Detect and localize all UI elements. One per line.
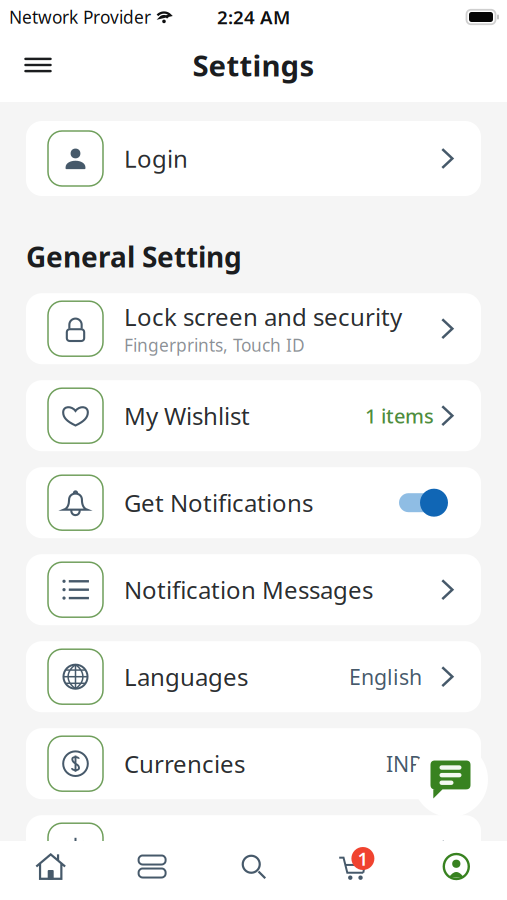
button[interactable]: Menu [16, 43, 60, 87]
staticText: My Wishlist [124, 400, 250, 432]
staticText: 1 items [365, 402, 434, 429]
staticText: Lock screen and security [124, 301, 402, 333]
button[interactable]: Search [203, 841, 304, 900]
button[interactable]: Login [26, 121, 481, 196]
staticText: Settings [192, 45, 314, 84]
button[interactable]: Lock screen and security [26, 293, 481, 364]
button[interactable]: Chat support [413, 742, 488, 817]
button[interactable]: Profile [406, 841, 507, 900]
staticText: INR [386, 749, 422, 778]
button[interactable]: Get Notifications [26, 467, 481, 538]
staticText: Fingerprints, Touch ID [124, 334, 305, 357]
staticText: Login [124, 143, 188, 174]
staticText: Notification Messages [124, 574, 373, 606]
staticText: 2:24 AM [217, 5, 290, 29]
staticText: Light [371, 836, 422, 865]
button[interactable]: Categories [101, 841, 203, 900]
button[interactable]: Currencies [26, 728, 481, 799]
button[interactable]: Notification Messages [26, 554, 481, 625]
staticText: Theme [124, 835, 202, 867]
staticText: English [349, 662, 422, 691]
staticText: Get Notifications [124, 487, 313, 519]
staticText: Currencies [124, 748, 245, 780]
button[interactable]: Home [0, 841, 101, 900]
button[interactable]: My Wishlist [26, 380, 481, 451]
button[interactable]: Languages [26, 641, 481, 712]
staticText: 1 [357, 846, 368, 871]
button[interactable]: Cart, 1 item [304, 841, 406, 900]
staticText: Languages [124, 661, 248, 693]
staticText: General Setting [26, 238, 242, 275]
button[interactable]: Theme [26, 815, 481, 886]
staticText: Network Provider [9, 5, 151, 28]
